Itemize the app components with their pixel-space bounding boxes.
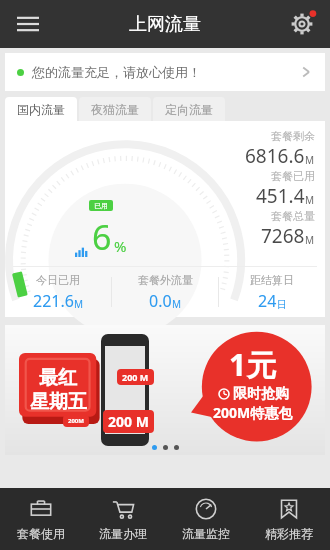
staticText: 流量监控 [182, 526, 230, 541]
staticText: 6 [92, 214, 112, 260]
staticText: 精彩推荐 [265, 526, 313, 541]
staticText: 今日已用 [36, 273, 80, 287]
button[interactable]: 流量监控 [164, 488, 247, 550]
button[interactable]: Menu [6, 2, 50, 46]
staticText: 距结算日 [250, 273, 294, 287]
staticText: 星期五 [30, 390, 87, 414]
staticText: M [305, 153, 315, 167]
button[interactable]: 距结算日 [219, 267, 325, 317]
staticText: M [305, 193, 315, 207]
button[interactable]: 定向流量 [153, 97, 225, 121]
staticText: 221.6 [33, 290, 74, 312]
button[interactable]: 流量办理 [82, 488, 164, 550]
staticText: 套餐使用 [17, 526, 65, 541]
staticText: M [74, 297, 84, 311]
staticText: 夜猫流量 [91, 102, 139, 117]
staticText: 套餐剩余 [271, 129, 315, 143]
button[interactable]: 套餐使用 [0, 488, 82, 550]
staticText: M [172, 297, 182, 311]
button[interactable]: 套餐外流量 [112, 267, 218, 317]
staticText: 200M特惠包 [213, 403, 293, 422]
button[interactable]: Settings [280, 2, 324, 46]
button[interactable]: 国内流量 [5, 97, 77, 121]
staticText: 上网流量 [129, 13, 201, 36]
button[interactable]: 今日已用 [5, 267, 111, 317]
button[interactable]: 精彩推荐 [247, 488, 330, 550]
staticText: 24 [258, 290, 277, 312]
button[interactable]: Promotion banner [5, 325, 325, 455]
staticText: 200 M [108, 412, 149, 431]
button[interactable]: 您的流量充足，请放心使用！ [5, 53, 325, 91]
staticText: 限时抢购 [233, 385, 289, 403]
staticText: 国内流量 [17, 102, 65, 117]
staticText: 200 M [122, 371, 149, 383]
staticText: 0.0 [149, 290, 172, 312]
staticText: 451.4 [256, 183, 305, 209]
staticText: 6816.6 [245, 143, 305, 169]
staticText: 7268 [261, 223, 305, 249]
button[interactable]: 夜猫流量 [79, 97, 151, 121]
staticText: 200M [68, 417, 84, 425]
staticText: 最红 [39, 366, 77, 390]
staticText: 套餐总量 [271, 209, 315, 223]
staticText: 您的流量充足，请放心使用！ [32, 64, 201, 80]
staticText: 流量办理 [99, 526, 147, 541]
staticText: 套餐已用 [271, 169, 315, 183]
staticText: 1元 [229, 344, 277, 385]
staticText: 套餐外流量 [138, 273, 193, 287]
staticText: % [114, 236, 127, 256]
staticText: 定向流量 [165, 102, 213, 117]
staticText: 日 [277, 298, 287, 311]
staticText: M [305, 233, 315, 247]
staticText: 已用 [94, 201, 108, 210]
